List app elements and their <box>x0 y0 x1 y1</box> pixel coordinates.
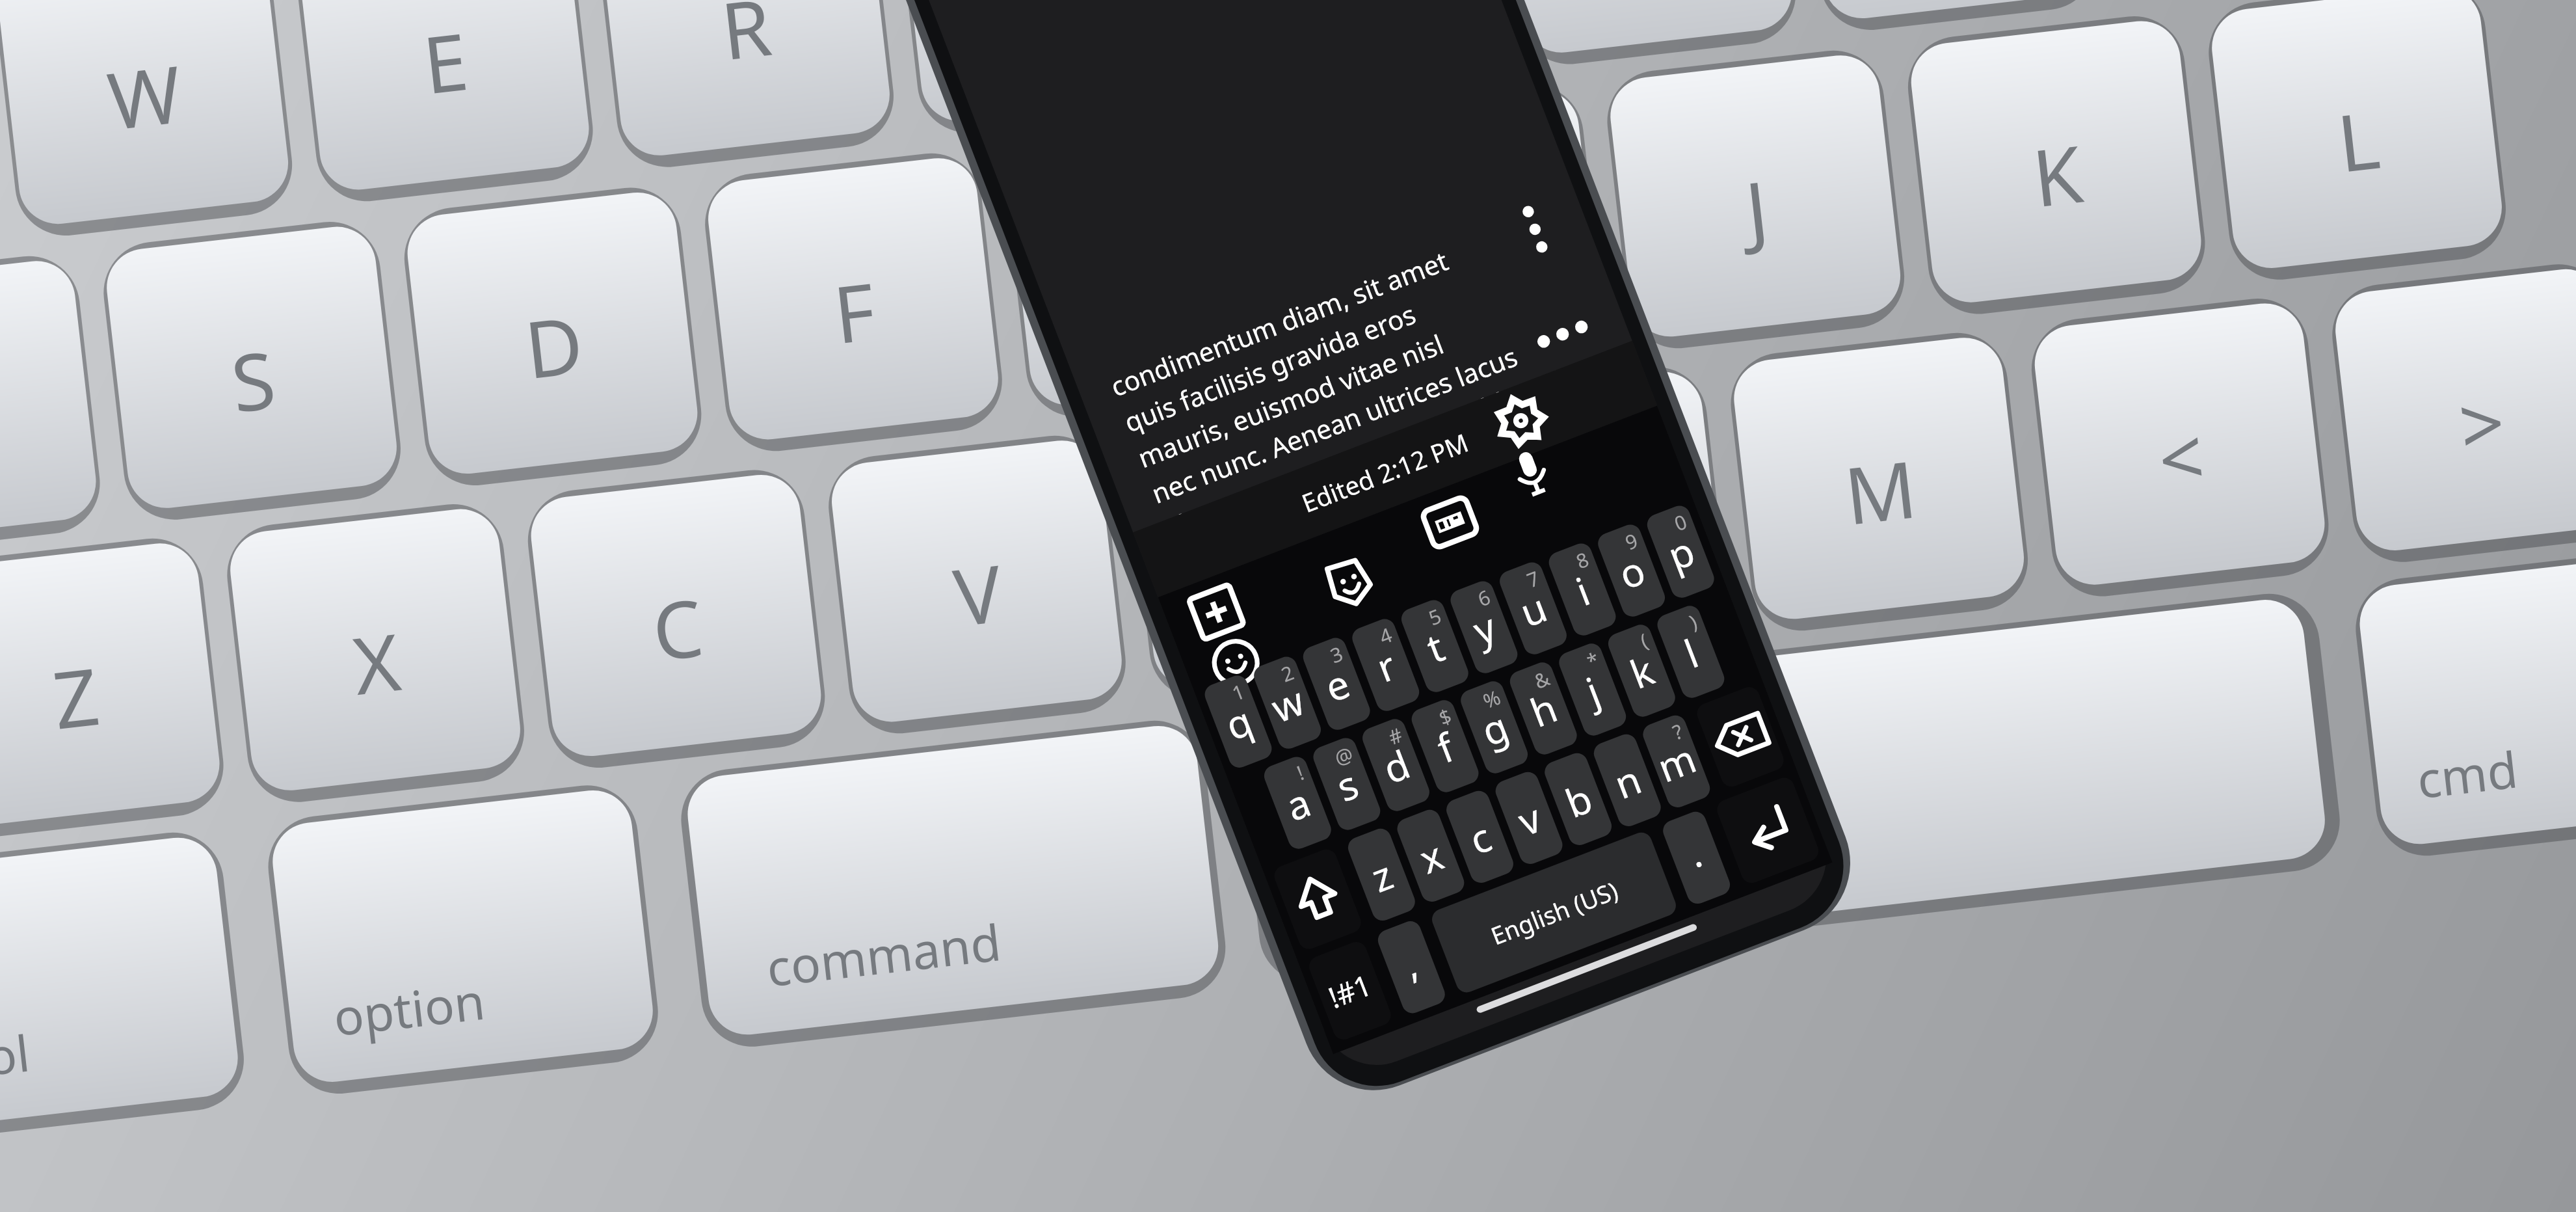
button[interactable]: Note body <box>386 0 1134 157</box>
button[interactable]: Edited 2:12 PM <box>451 111 786 211</box>
button[interactable]: Stickers <box>453 281 561 392</box>
button[interactable]: Symbols <box>474 870 603 1018</box>
button[interactable]: Emoji <box>402 354 510 465</box>
button[interactable]: Voice typing <box>595 172 698 284</box>
button[interactable]: Space, English (US) <box>582 764 819 907</box>
button[interactable]: Enter <box>799 582 933 736</box>
button[interactable]: Add content <box>368 240 476 351</box>
button[interactable]: Settings <box>659 39 773 154</box>
button[interactable]: GIF <box>531 233 644 344</box>
button[interactable]: More options <box>729 0 832 85</box>
button[interactable]: Shift <box>453 725 592 892</box>
button[interactable]: Backspace <box>783 455 907 598</box>
